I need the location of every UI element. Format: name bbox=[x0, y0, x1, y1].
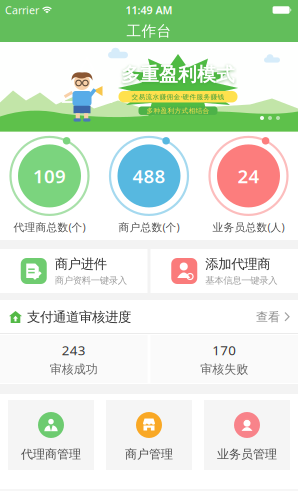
staticText: 添加代理商 bbox=[205, 256, 270, 272]
staticText: 代理商总数(个) bbox=[13, 220, 85, 234]
staticText: 商户总数(个) bbox=[118, 220, 179, 234]
staticText: 业务员管理 bbox=[217, 447, 277, 462]
button[interactable]: 业务员管理 bbox=[204, 400, 290, 470]
staticText: 交易流水赚佣金·硬件服务赚钱 bbox=[131, 92, 224, 101]
staticText: 商户资料一键录入 bbox=[55, 275, 127, 286]
button[interactable]: 商户进件 bbox=[0, 249, 147, 293]
staticText: 24 bbox=[237, 163, 259, 188]
staticText: 商户进件 bbox=[55, 256, 107, 272]
button[interactable]: 代理商管理 bbox=[8, 400, 94, 470]
staticText: 商户管理 bbox=[125, 447, 173, 462]
staticText: 多重盈利模式 bbox=[121, 63, 235, 86]
staticText: 243 bbox=[62, 341, 86, 359]
button[interactable]: 添加代理商 bbox=[150, 249, 298, 293]
staticText: 业务员总数(人) bbox=[212, 220, 284, 234]
staticText: 查看 bbox=[256, 310, 280, 324]
staticText: 488 bbox=[132, 163, 165, 188]
staticText: 基本信息一键录入 bbox=[205, 275, 277, 286]
staticText: 代理商管理 bbox=[21, 447, 81, 462]
button[interactable]: 商户管理 bbox=[106, 400, 192, 470]
staticText: 审核失败 bbox=[200, 362, 248, 377]
staticText: 工作台 bbox=[126, 22, 171, 40]
button[interactable]: 支付通道审核进度 bbox=[0, 300, 298, 334]
button[interactable]: 多重盈利模式 bbox=[0, 42, 298, 132]
staticText: 审核成功 bbox=[50, 362, 98, 377]
staticText: 170 bbox=[212, 341, 236, 359]
staticText: Carrier bbox=[5, 3, 39, 17]
staticText: 多种盈利方式相结合 bbox=[146, 107, 209, 115]
staticText: 109 bbox=[33, 163, 66, 188]
staticText: 11:49 AM bbox=[125, 3, 172, 17]
staticText: 支付通道审核进度 bbox=[27, 309, 131, 325]
